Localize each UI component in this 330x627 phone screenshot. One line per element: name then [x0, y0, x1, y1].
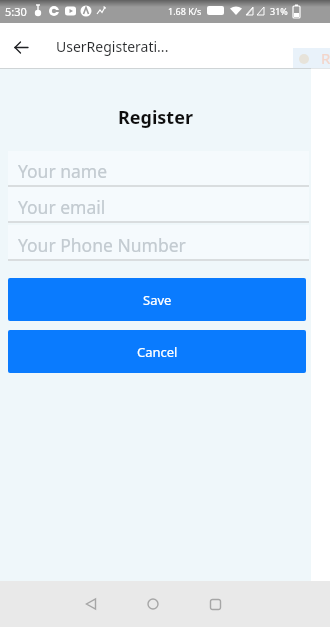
button[interactable]: Your Phone Number [8, 225, 309, 261]
staticText: UserRegisterati... [56, 37, 169, 56]
button[interactable]: Save [8, 278, 306, 321]
button[interactable] [60, 581, 122, 627]
button[interactable] [14, 40, 29, 55]
button[interactable]: Cancel [8, 330, 306, 373]
staticText: Your email [18, 195, 106, 219]
staticText: 31% [270, 5, 288, 17]
staticText: Cancel [137, 343, 178, 361]
staticText: Save [143, 291, 172, 309]
staticText: Register [0, 105, 311, 130]
staticText: Your Phone Number [18, 233, 186, 257]
button[interactable] [184, 581, 246, 627]
staticText: R [321, 48, 330, 68]
staticText: Your name [18, 159, 108, 183]
staticText: 1.68 K/s [168, 5, 202, 17]
button[interactable]: Your name [8, 151, 309, 187]
button[interactable]: Your email [8, 187, 309, 223]
staticText: 5:30 [5, 4, 27, 19]
button[interactable] [122, 581, 184, 627]
